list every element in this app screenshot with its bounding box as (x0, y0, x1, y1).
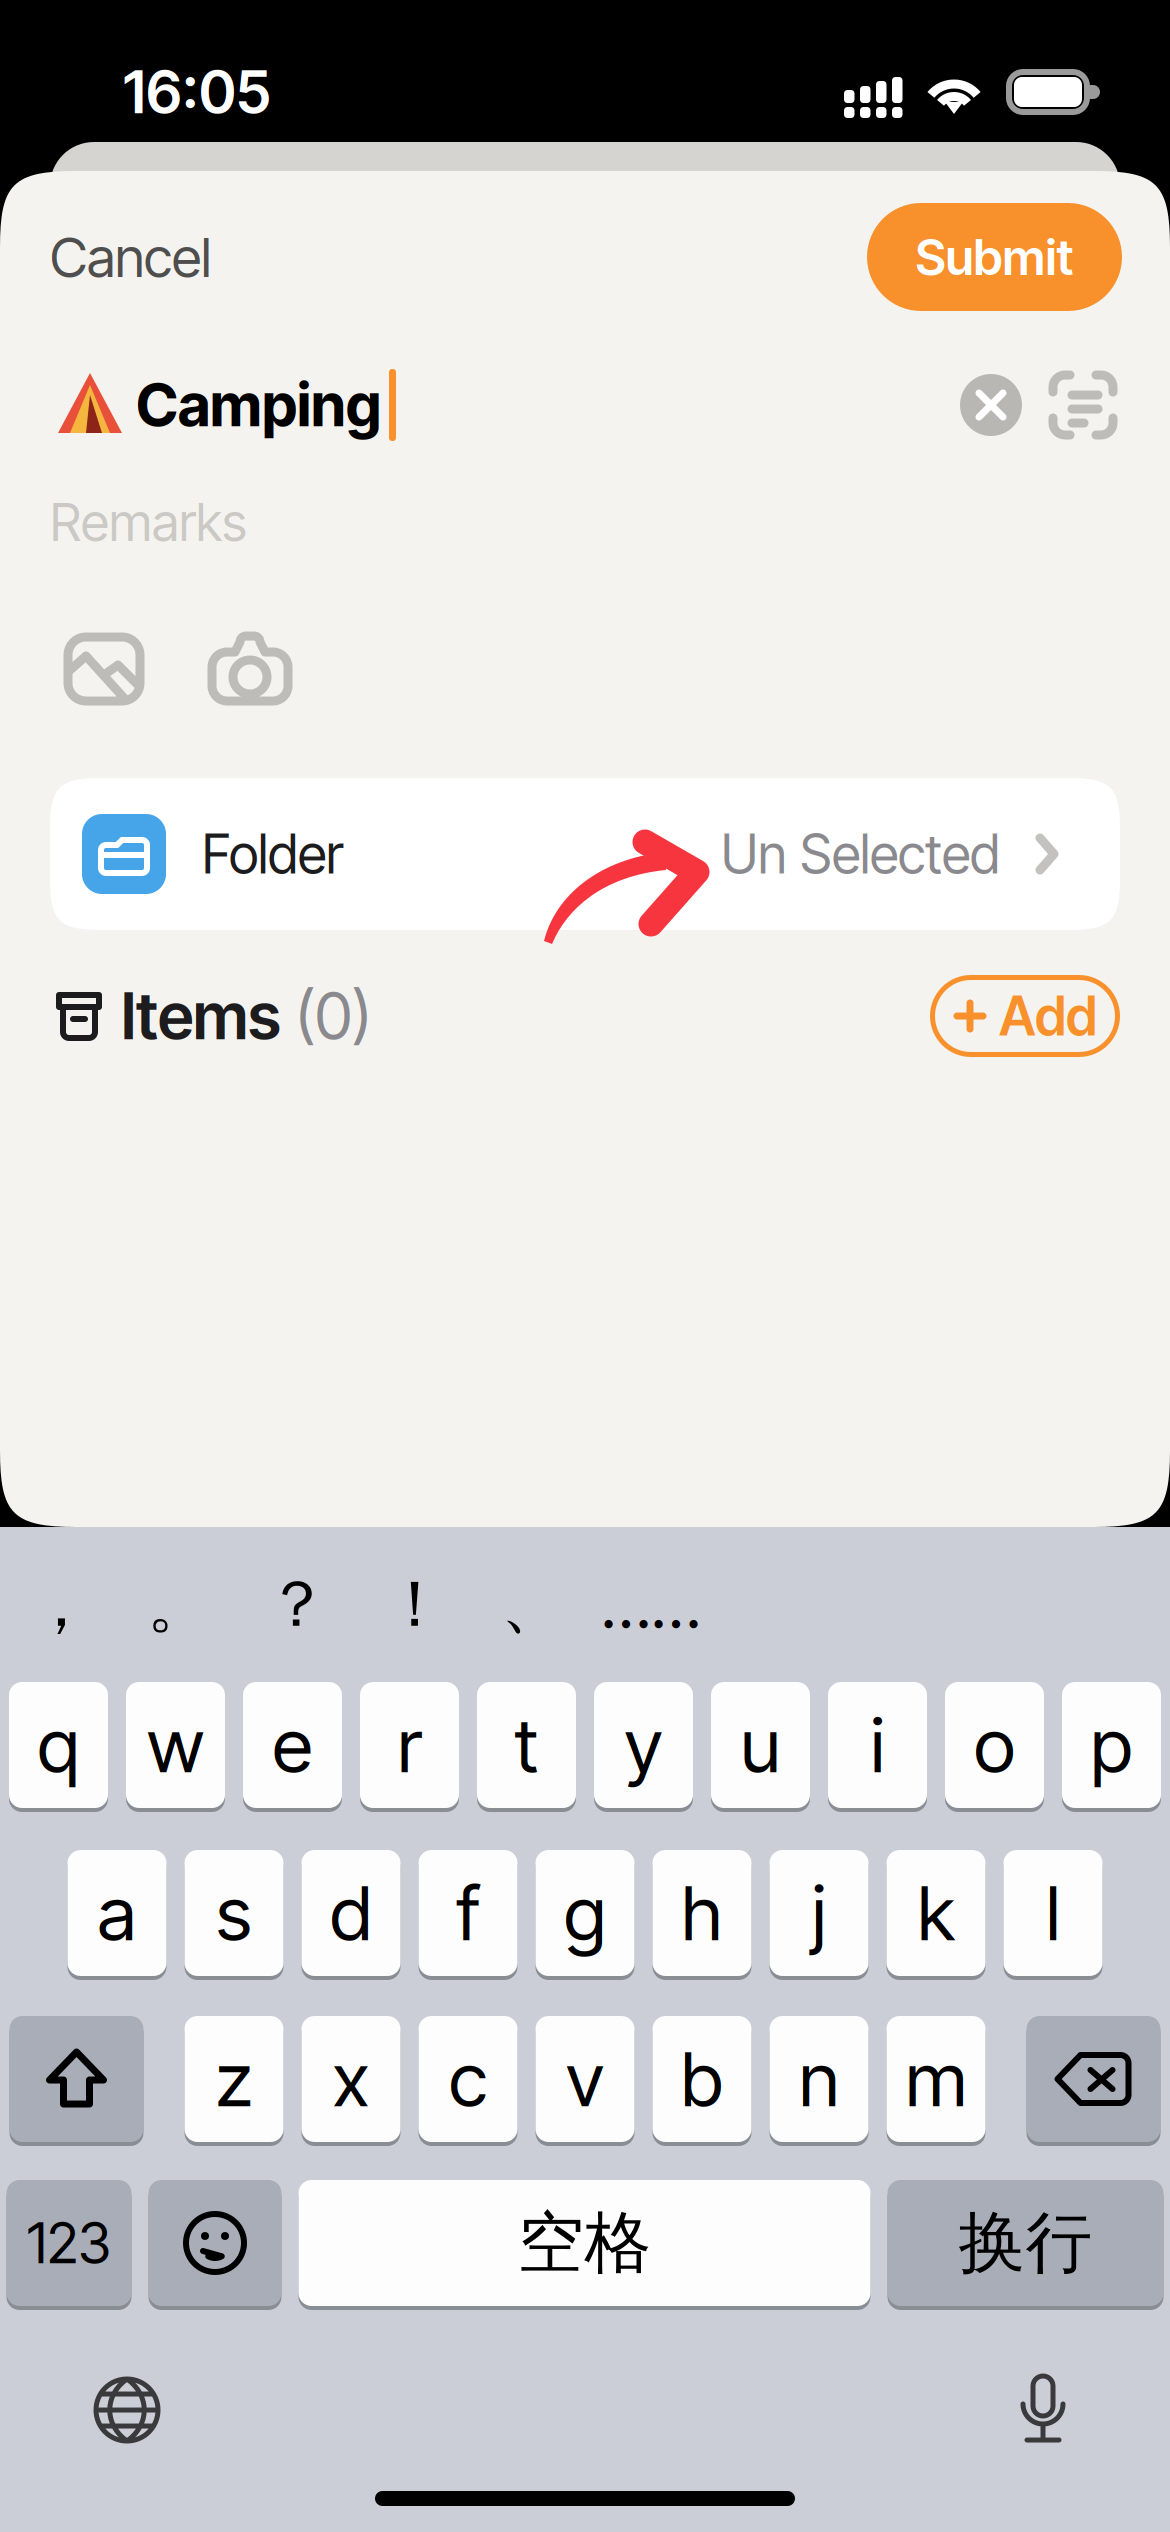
staticText: o (974, 1700, 1015, 1790)
staticText: y (624, 1700, 662, 1790)
button[interactable]: ？ (238, 1549, 356, 1659)
button[interactable]: c (418, 2016, 517, 2146)
button[interactable]: 123 (6, 2180, 131, 2310)
button[interactable]: s (184, 1850, 283, 1980)
staticText: Un Selected (721, 822, 1000, 886)
button[interactable]: …… (592, 1549, 710, 1659)
button[interactable]: b (652, 2016, 751, 2146)
button[interactable]: Next keyboard (72, 2355, 182, 2465)
staticText: 、 (501, 1564, 565, 1645)
button[interactable]: z (184, 2016, 283, 2146)
staticText: j (812, 1868, 826, 1958)
staticText: Submit (915, 227, 1073, 287)
staticText: f (456, 1868, 479, 1958)
button[interactable]: Take photo (195, 619, 305, 719)
button[interactable]: i (828, 1682, 927, 1812)
button[interactable]: l (1003, 1850, 1102, 1980)
button[interactable]: Emoji (148, 2180, 281, 2310)
button[interactable]: Submit (867, 203, 1122, 311)
button[interactable]: ！ (356, 1549, 474, 1659)
staticText: Camping (136, 369, 381, 440)
button[interactable]: u (711, 1682, 810, 1812)
button[interactable]: r (360, 1682, 459, 1812)
staticText: …… (601, 1566, 701, 1643)
staticText: v (566, 2034, 604, 2124)
staticText: n (799, 2034, 839, 2124)
staticText: 123 (27, 2209, 111, 2277)
staticText: g (564, 1868, 606, 1958)
staticText: t (514, 1700, 538, 1790)
button[interactable]: Choose photo (49, 619, 159, 719)
button[interactable]: Delete (1026, 2016, 1160, 2146)
staticText: c (449, 2034, 487, 2124)
button[interactable]: k (886, 1850, 985, 1980)
staticText: Remarks (50, 490, 247, 553)
button[interactable]: o (945, 1682, 1044, 1812)
button[interactable]: f (418, 1850, 517, 1980)
staticText: p (1090, 1700, 1132, 1790)
button[interactable]: Scan text (1046, 368, 1120, 442)
staticText: Items (121, 977, 281, 1055)
staticText: Cancel (50, 224, 211, 290)
staticText: a (97, 1868, 136, 1958)
staticText: 换行 (958, 2201, 1092, 2285)
staticText: q (37, 1700, 79, 1790)
button[interactable]: Folder (50, 778, 1120, 930)
staticText: d (330, 1868, 372, 1958)
staticText: x (332, 2034, 369, 2124)
staticText: k (917, 1868, 954, 1958)
button[interactable]: m (886, 2016, 985, 2146)
button[interactable]: n (769, 2016, 868, 2146)
staticText: w (147, 1700, 204, 1790)
button[interactable]: ， (2, 1549, 120, 1659)
button[interactable]: 换行 (887, 2180, 1163, 2310)
button[interactable]: j (769, 1850, 868, 1980)
staticText: m (905, 2034, 966, 2124)
button[interactable]: 。 (120, 1549, 238, 1659)
staticText: l (1046, 1868, 1060, 1958)
button[interactable]: d (301, 1850, 400, 1980)
button[interactable]: p (1062, 1682, 1161, 1812)
button[interactable]: y (594, 1682, 693, 1812)
staticText: Folder (202, 822, 343, 886)
button[interactable]: Clear text (954, 368, 1028, 442)
staticText: 16:05 (123, 56, 271, 127)
staticText: e (272, 1700, 312, 1790)
button[interactable]: t (477, 1682, 576, 1812)
button[interactable]: Add (930, 975, 1120, 1057)
button[interactable]: x (301, 2016, 400, 2146)
staticText: 空格 (517, 2201, 651, 2285)
button[interactable]: Cancel (50, 202, 280, 312)
staticText: h (681, 1868, 722, 1958)
button[interactable]: a (67, 1850, 166, 1980)
staticText: r (397, 1700, 421, 1790)
staticText: s (216, 1868, 252, 1958)
staticText: ？ (265, 1564, 329, 1645)
button[interactable]: 空格 (298, 2180, 870, 2310)
button[interactable]: h (652, 1850, 751, 1980)
button[interactable]: e (243, 1682, 342, 1812)
button[interactable]: q (9, 1682, 108, 1812)
staticText: ， (29, 1564, 93, 1645)
button[interactable]: v (535, 2016, 634, 2146)
staticText: z (215, 2034, 252, 2124)
staticText: b (681, 2034, 723, 2124)
staticText: 。 (147, 1564, 211, 1645)
staticText: i (870, 1700, 884, 1790)
button[interactable]: g (535, 1850, 634, 1980)
staticText: (0) (295, 977, 372, 1055)
button[interactable]: Shift (9, 2016, 143, 2146)
button[interactable]: w (126, 1682, 225, 1812)
button[interactable]: 、 (474, 1549, 592, 1659)
staticText: u (740, 1700, 780, 1790)
staticText: Add (999, 984, 1097, 1048)
button[interactable]: Dictation (988, 2355, 1098, 2465)
staticText: ！ (383, 1564, 447, 1645)
